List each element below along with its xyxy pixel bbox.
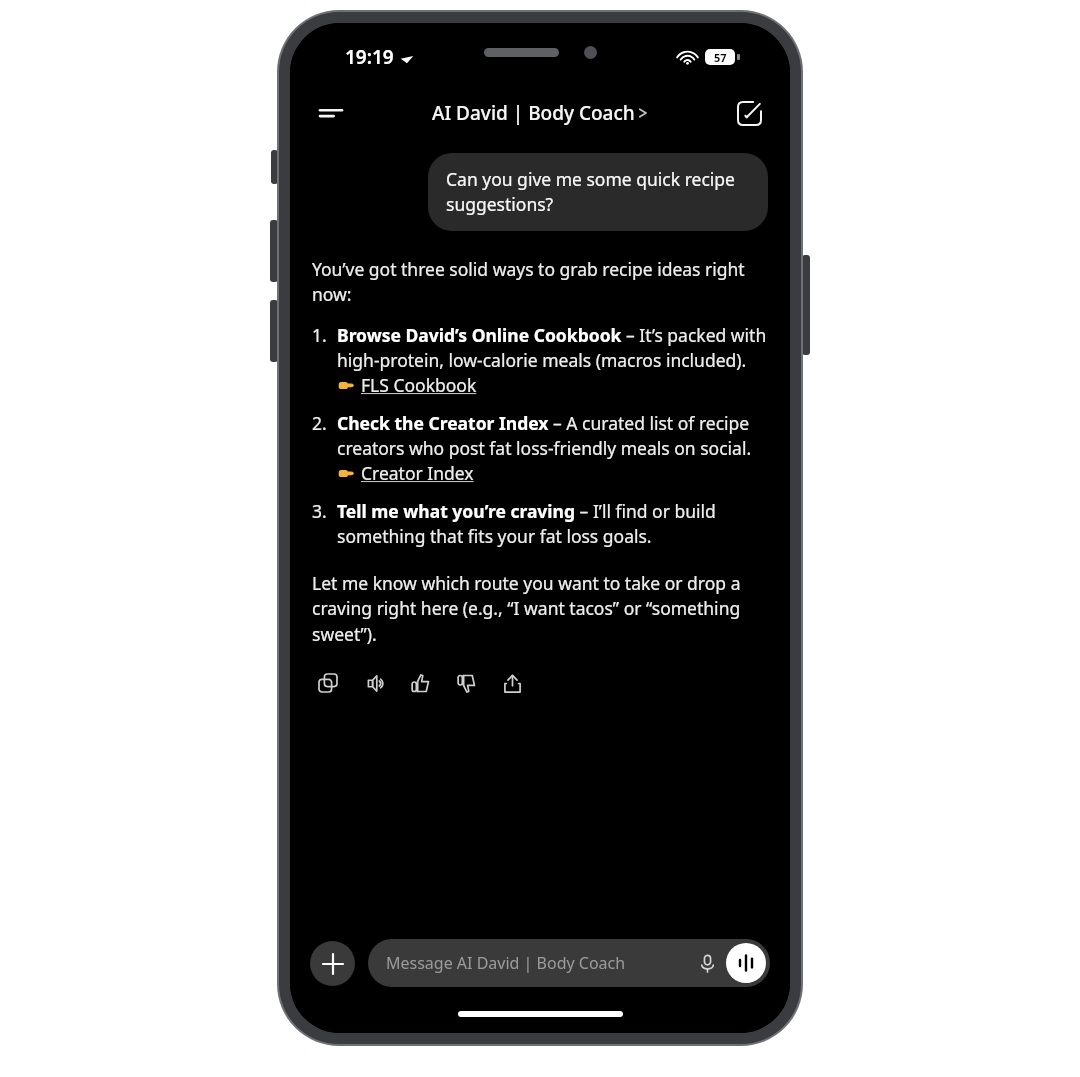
staticText: 57: [714, 50, 727, 65]
staticText: Check the Creator Index – A curated list…: [337, 411, 768, 461]
staticText: Browse David’s Online Cookbook – It’s pa…: [337, 323, 768, 373]
staticText: AI David | Body Coach: [432, 100, 635, 126]
button[interactable]: New chat: [726, 90, 772, 136]
staticText: 1.: [312, 323, 327, 347]
button[interactable]: Can you give me some quick recipe sugges…: [428, 153, 768, 231]
staticText: Tell me what you’re craving – I’ll find …: [337, 499, 768, 549]
staticText: 19:19: [345, 44, 394, 70]
button[interactable]: Read aloud: [358, 667, 390, 699]
staticText: FLS Cookbook: [361, 373, 477, 397]
button[interactable]: Copy: [312, 667, 344, 699]
button[interactable]: Dictate: [690, 946, 724, 980]
staticText: 2.: [312, 411, 327, 435]
staticText: You’ve got three solid ways to grab reci…: [312, 257, 768, 307]
staticText: Message AI David | Body Coach: [386, 952, 690, 974]
button[interactable]: Add attachment: [310, 941, 355, 986]
button[interactable]: Good response: [404, 667, 436, 699]
button[interactable]: AI David | Body Coach: [432, 100, 648, 126]
button[interactable]: Message AI David | Body Coach: [368, 939, 770, 987]
button[interactable]: Bad response: [450, 667, 482, 699]
staticText: Creator Index: [361, 461, 474, 485]
staticText: Can you give me some quick recipe sugges…: [446, 167, 750, 217]
button[interactable]: Menu: [308, 90, 354, 136]
button[interactable]: Share: [496, 667, 528, 699]
button[interactable]: Voice mode: [726, 943, 766, 983]
button[interactable]: Creator Index: [337, 461, 474, 485]
staticText: 3.: [312, 499, 327, 523]
button[interactable]: FLS Cookbook: [337, 373, 477, 397]
staticText: Let me know which route you want to take…: [312, 571, 768, 647]
